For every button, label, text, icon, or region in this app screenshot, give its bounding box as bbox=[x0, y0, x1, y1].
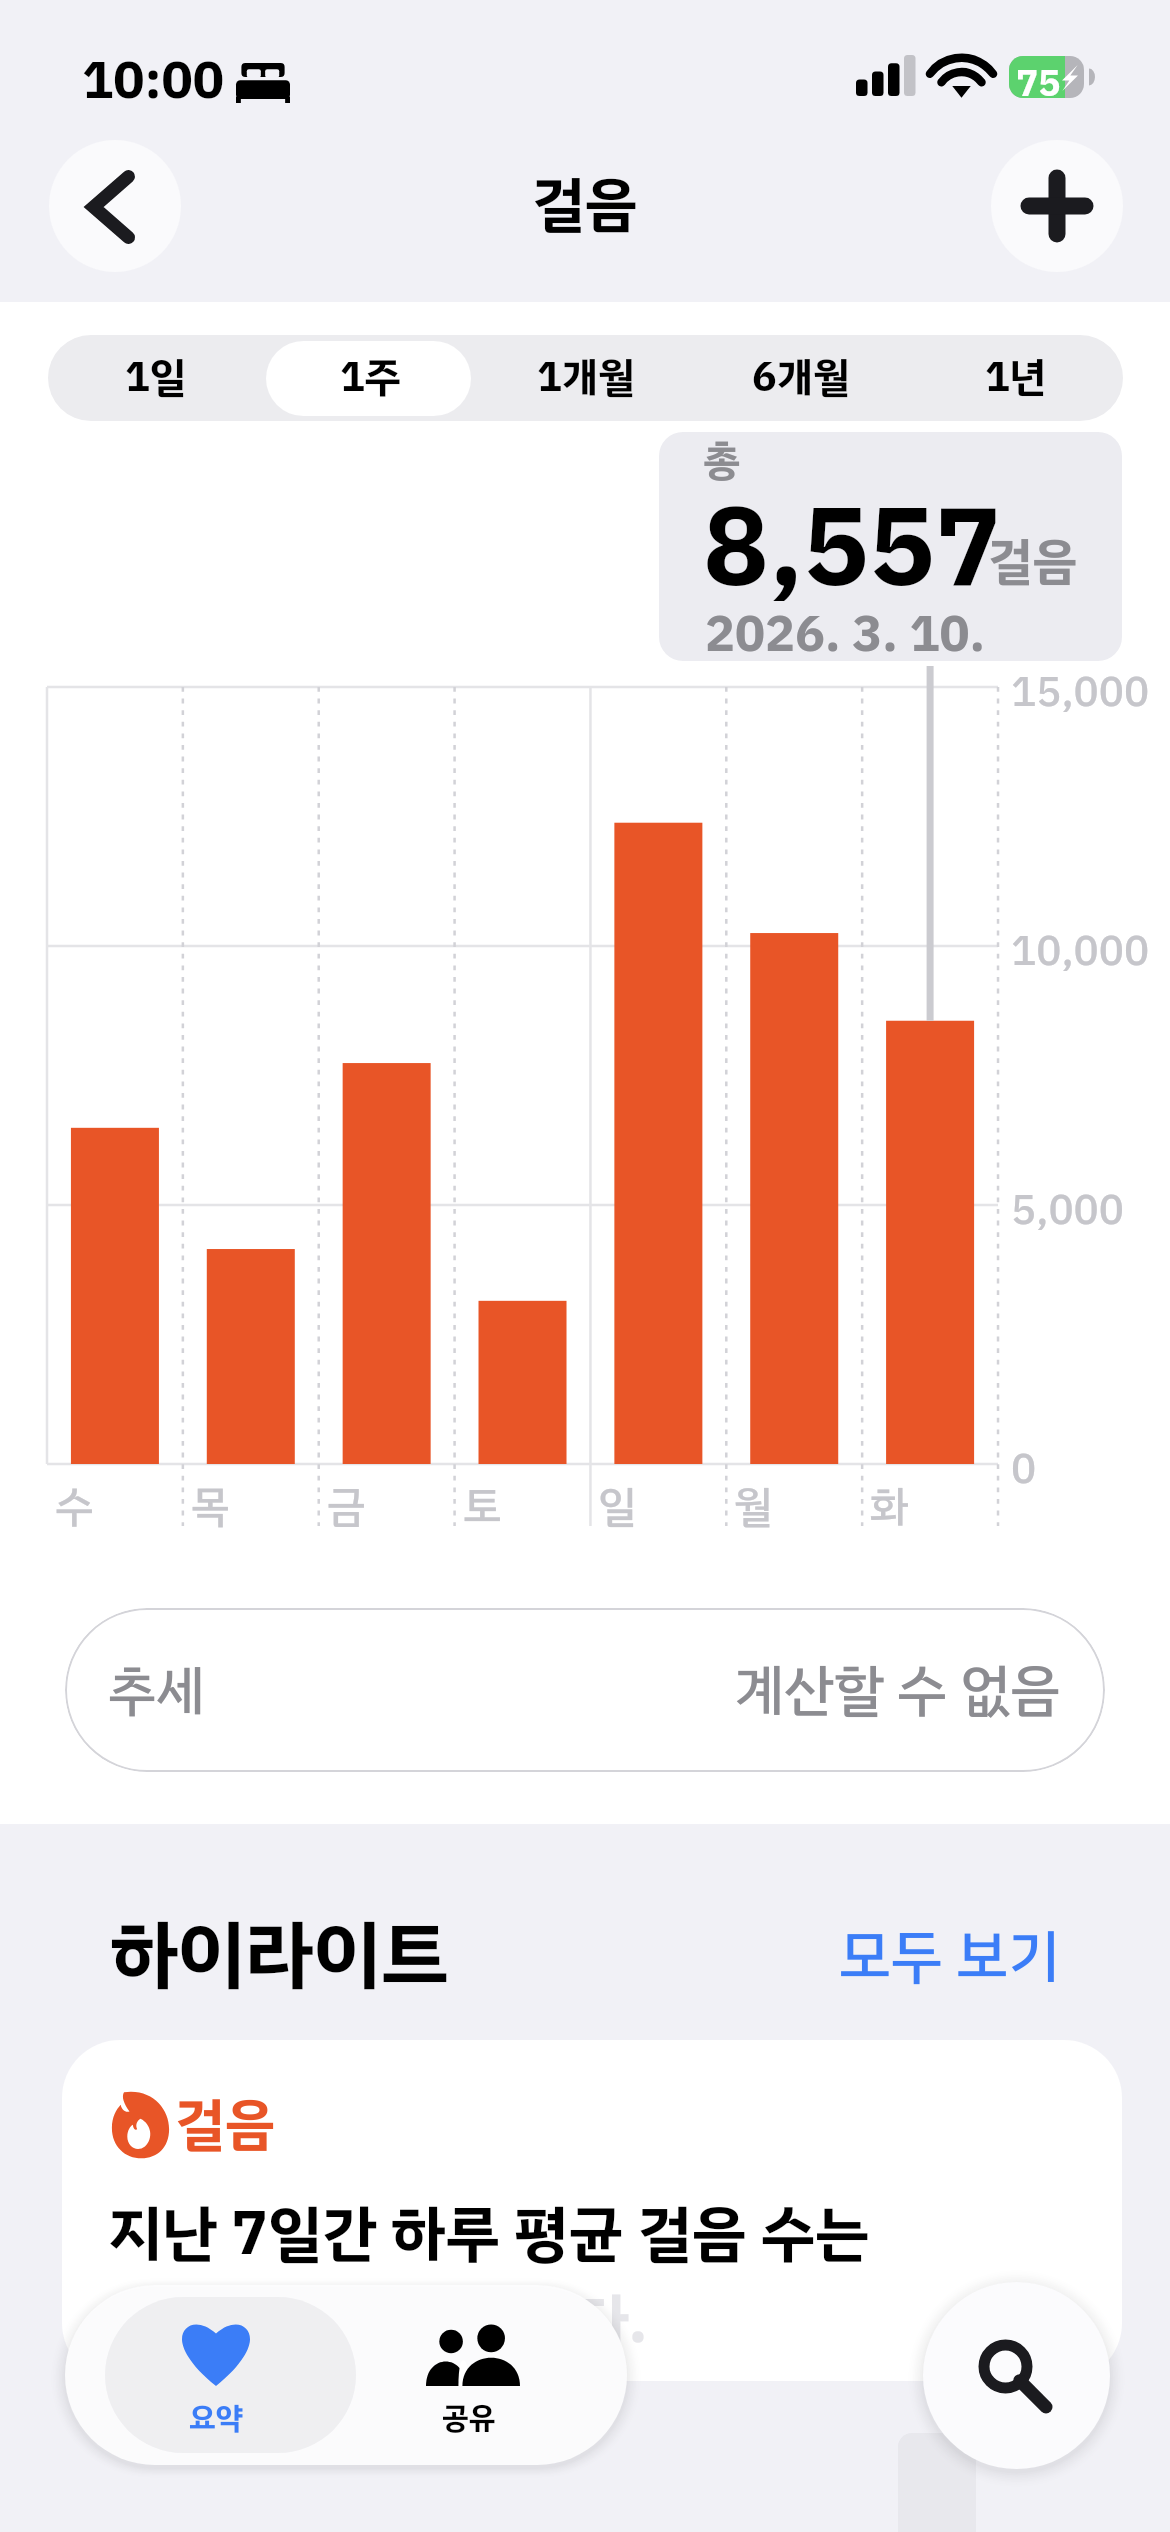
staticText: 목 bbox=[191, 1474, 230, 1539]
staticText: 지난 7일간 하루 평균 걸음 수는 bbox=[108, 2188, 870, 2280]
staticText: 일 bbox=[598, 1474, 637, 1539]
staticText: 요약 bbox=[189, 2395, 243, 2440]
staticText: 1주 bbox=[340, 347, 402, 409]
staticText: 75 bbox=[1016, 56, 1061, 112]
button[interactable]: 요약 bbox=[65, 2285, 346, 2465]
button[interactable]: 1주 bbox=[263, 335, 478, 421]
button[interactable]: 공유 bbox=[346, 2285, 627, 2465]
staticText: 계산할 수 없음 bbox=[734, 1648, 1061, 1732]
staticText: 공유 bbox=[442, 2395, 496, 2440]
button[interactable]: 1년 bbox=[908, 335, 1123, 421]
staticText: 1년 bbox=[985, 347, 1047, 409]
button[interactable]: 6개월 bbox=[693, 335, 908, 421]
button[interactable]: Search bbox=[923, 2282, 1110, 2469]
staticText: 1일 bbox=[125, 347, 187, 409]
staticText: 약 8,190걸음 입니다. bbox=[108, 2276, 648, 2368]
staticText: 15,000 bbox=[1011, 660, 1150, 723]
button[interactable]: 1개월 bbox=[478, 335, 693, 421]
staticText: 10,000 bbox=[1011, 919, 1150, 982]
staticText: 금 bbox=[327, 1474, 366, 1539]
button[interactable]: 1일 bbox=[48, 335, 263, 421]
staticText: 걸음 bbox=[175, 2082, 275, 2166]
button[interactable]: Back bbox=[49, 140, 181, 272]
staticText: 5,000 bbox=[1011, 1178, 1124, 1241]
staticText: 걸음 bbox=[988, 524, 1078, 599]
staticText: 0 bbox=[1011, 1437, 1037, 1500]
staticText: 6개월 bbox=[752, 347, 850, 409]
staticText: 걸음 bbox=[532, 160, 638, 248]
staticText: 추세 bbox=[108, 1650, 205, 1731]
staticText: 8,557 bbox=[703, 466, 1002, 631]
staticText: 2026. 3. 10. bbox=[705, 597, 986, 661]
staticText: 총 bbox=[703, 432, 741, 491]
staticText: 1개월 bbox=[537, 347, 635, 409]
staticText: 하이라이트 bbox=[110, 1899, 449, 2013]
button[interactable]: 걸음 bbox=[62, 2040, 1122, 2381]
staticText: 10:00 bbox=[82, 42, 224, 120]
button[interactable]: 모두 보기 bbox=[839, 1913, 1060, 2000]
staticText: 월 bbox=[734, 1474, 773, 1539]
button[interactable]: 추세 bbox=[65, 1608, 1105, 1772]
button[interactable]: Add bbox=[991, 140, 1123, 272]
staticText: 화 bbox=[870, 1474, 909, 1539]
staticText: 수 bbox=[55, 1474, 94, 1539]
staticText: 토 bbox=[463, 1474, 502, 1539]
staticText: 모두 보기 bbox=[839, 1913, 1060, 2000]
